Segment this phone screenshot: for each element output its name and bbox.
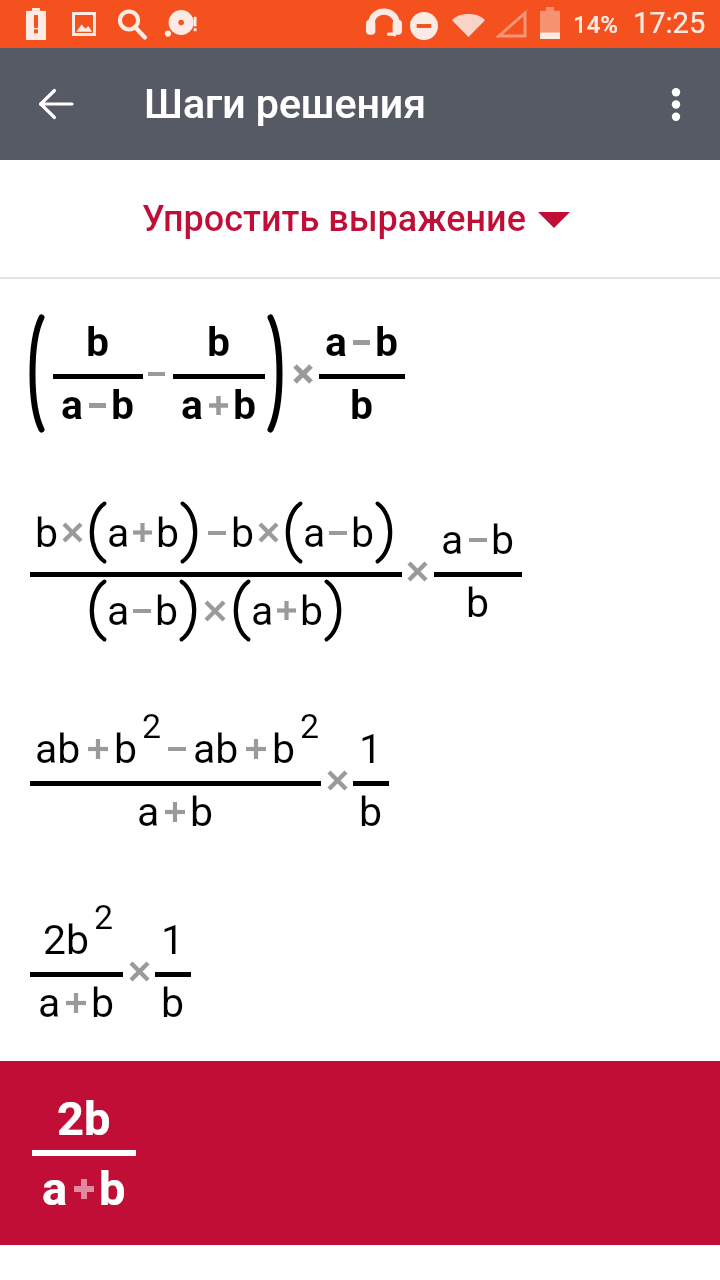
staticText: 1 xyxy=(161,916,185,964)
staticText: ab xyxy=(35,725,81,773)
staticText: 2b xyxy=(43,916,90,964)
staticText: b xyxy=(491,516,515,564)
staticText: a xyxy=(251,587,274,635)
staticText: b xyxy=(351,509,375,557)
staticText: 2 xyxy=(300,706,320,746)
staticText: 2 xyxy=(142,706,162,746)
staticText: b xyxy=(161,979,185,1027)
staticText: 17:25 xyxy=(633,6,706,40)
staticText: a xyxy=(181,381,203,429)
staticText: b xyxy=(114,725,138,773)
staticText: b xyxy=(359,788,383,836)
staticText: 14% xyxy=(573,11,618,39)
staticText: b xyxy=(231,509,255,557)
button[interactable]: Back xyxy=(0,48,112,160)
staticText: b xyxy=(156,509,180,557)
staticText: a xyxy=(325,318,347,366)
staticText: b xyxy=(466,579,490,627)
staticText: a xyxy=(61,381,83,429)
staticText: ab xyxy=(193,725,239,773)
staticText: Упростить выражение xyxy=(142,198,526,240)
staticText: a xyxy=(42,1161,68,1216)
staticText: b xyxy=(91,979,115,1027)
staticText: 1 xyxy=(359,725,383,773)
staticText: b xyxy=(99,1161,126,1216)
staticText: b xyxy=(233,381,257,429)
staticText: a xyxy=(107,587,130,635)
staticText: b xyxy=(375,318,399,366)
staticText: b xyxy=(35,509,59,557)
staticText: a xyxy=(137,788,160,836)
staticText: b xyxy=(155,587,179,635)
staticText: 2 xyxy=(94,897,114,937)
staticText: b xyxy=(111,381,135,429)
staticText: b xyxy=(190,788,214,836)
button[interactable]: More options xyxy=(620,48,720,160)
button[interactable]: Упростить выражение xyxy=(0,160,720,277)
staticText: b xyxy=(207,318,231,366)
staticText: 2b xyxy=(57,1091,111,1146)
staticText: a xyxy=(38,979,61,1027)
staticText: b xyxy=(86,318,110,366)
staticText: b xyxy=(272,725,296,773)
staticText: b xyxy=(300,587,324,635)
staticText: a xyxy=(303,509,326,557)
staticText: a xyxy=(441,516,464,564)
staticText: a xyxy=(107,509,130,557)
staticText: Шаги решения xyxy=(144,80,426,128)
staticText: b xyxy=(350,381,374,429)
